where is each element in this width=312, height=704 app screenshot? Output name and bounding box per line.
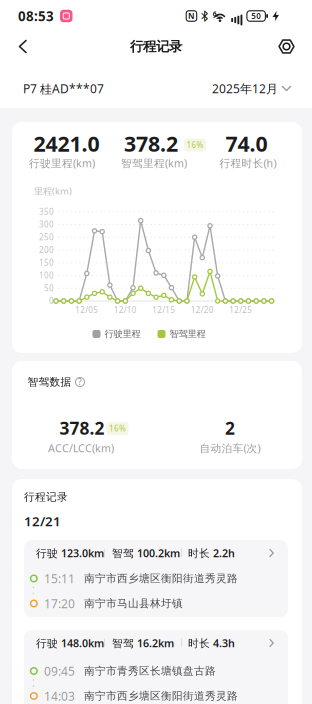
staticText: 300 [39, 219, 54, 230]
staticText: 12/05 [75, 305, 98, 315]
staticText: 16% [109, 423, 126, 434]
staticText: 行驶里程 [104, 328, 140, 340]
staticText: 里程(km) [34, 185, 72, 197]
staticText: 12/25 [229, 305, 252, 315]
staticText: ACC/LCC(km) [48, 441, 114, 455]
button[interactable]: Settings [273, 33, 299, 59]
staticText: 南宁市西乡塘区衡阳街道秀灵路 [84, 572, 238, 585]
staticText: 74.0 [225, 129, 267, 158]
staticText: 378.2 [124, 129, 178, 158]
button[interactable]: P7 桂AD***07 [23, 80, 104, 96]
staticText: 智驾 16.2km [112, 636, 174, 650]
button[interactable]: 智驾数据说明 [75, 377, 84, 386]
staticText: 50 [251, 11, 261, 21]
staticText: 09:45 [44, 663, 75, 679]
staticText: 100 [39, 270, 54, 281]
staticText: 行驶 123.0km [36, 546, 104, 560]
staticText: 250 [39, 232, 54, 242]
button[interactable]: 行驶 123.0km [24, 540, 288, 617]
staticText: 12/15 [152, 305, 175, 315]
staticText: 行程时长(h) [219, 156, 276, 170]
staticText: 15:11 [44, 570, 75, 586]
staticText: 350 [39, 206, 54, 217]
staticText: 南宁市西乡塘区衡阳街道秀灵路 [84, 689, 238, 702]
staticText: 时长 2.2h [188, 546, 235, 560]
staticText: 智驾里程(km) [121, 156, 187, 170]
button[interactable]: Back [10, 33, 36, 59]
staticText: 12/10 [114, 305, 137, 315]
staticText: ? [78, 377, 82, 387]
staticText: 378.2 [59, 416, 104, 439]
staticText: 12/21 [24, 512, 61, 530]
staticText: 14:03 [44, 688, 75, 704]
staticText: 自动泊车(次) [199, 441, 260, 455]
button[interactable]: 行驶 148.0km [24, 630, 288, 704]
staticText: 16% [186, 140, 203, 150]
staticText: 200 [39, 245, 54, 255]
staticText: 0 [49, 296, 54, 306]
staticText: 智驾里程 [169, 328, 205, 340]
staticText: 南宁市马山县林圩镇 [84, 597, 183, 610]
staticText: 智驾数据 [27, 375, 71, 388]
staticText: 智驾 100.2km [112, 546, 180, 560]
staticText: 150 [39, 257, 54, 268]
staticText: 17:20 [44, 595, 75, 611]
staticText: 08:53 [18, 7, 54, 25]
staticText: 时长 4.3h [188, 636, 235, 650]
staticText: 50 [44, 283, 54, 293]
staticText: P7 桂AD***07 [23, 80, 104, 96]
button[interactable]: 2025年12月 [212, 80, 291, 96]
staticText: N [188, 11, 195, 21]
staticText: 南宁市青秀区长塘镇盘古路 [84, 664, 216, 677]
staticText: 行驶里程(km) [29, 156, 95, 170]
staticText: 行程记录 [130, 38, 182, 55]
staticText: 6 [213, 9, 217, 18]
staticText: 12/20 [191, 305, 214, 315]
staticText: 2025年12月 [212, 80, 278, 96]
staticText: 行驶 148.0km [36, 636, 104, 650]
staticText: 2 [225, 416, 235, 439]
staticText: 2421.0 [33, 129, 99, 158]
staticText: 行程记录 [24, 490, 68, 503]
